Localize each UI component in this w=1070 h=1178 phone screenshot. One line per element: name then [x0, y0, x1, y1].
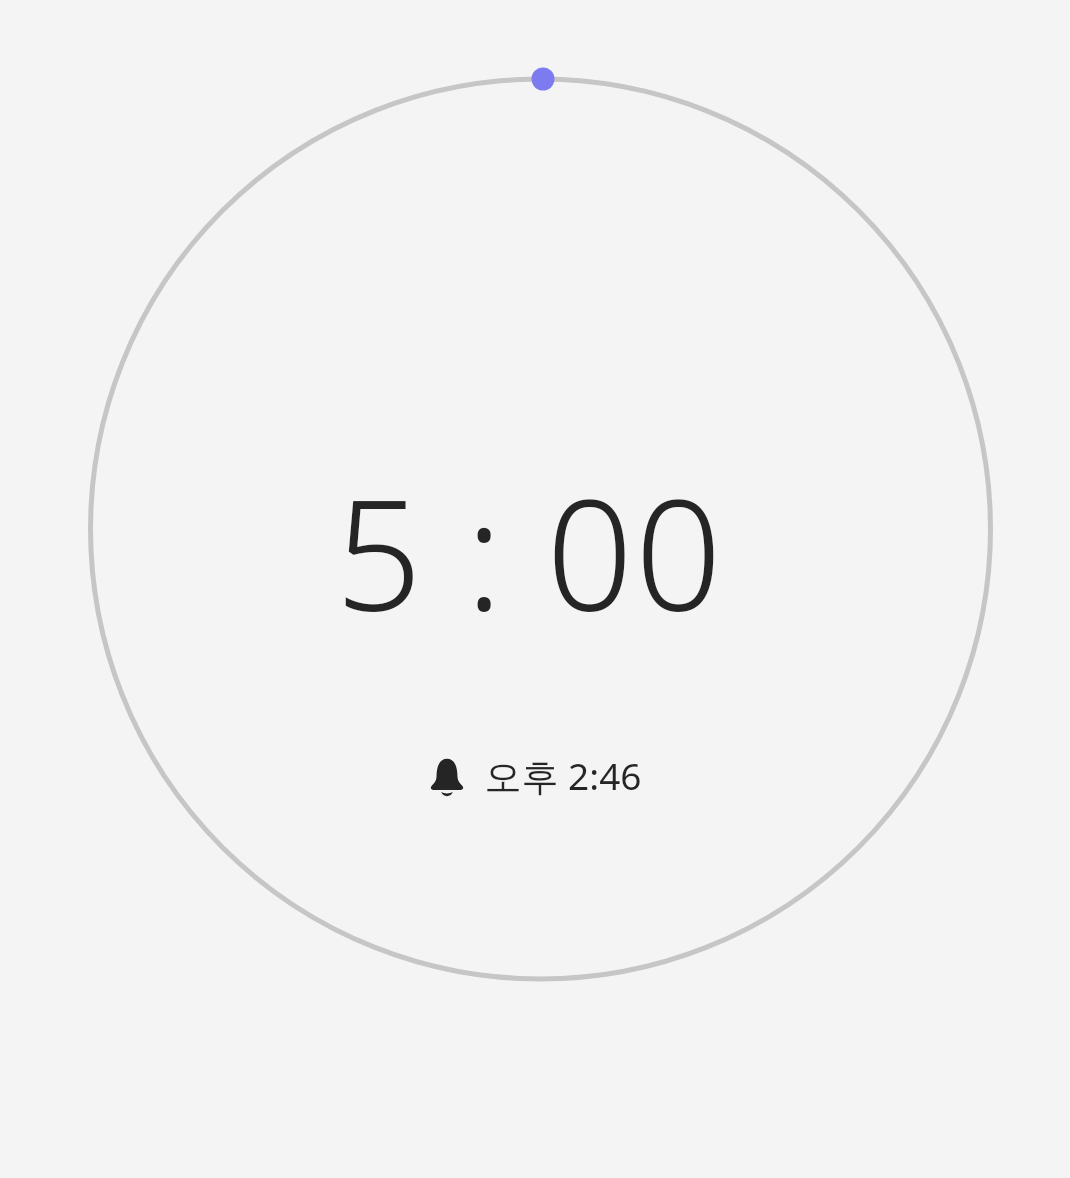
button[interactable]: 5 : 00: [0, 0, 1070, 1178]
other: Alarm: [429, 758, 465, 794]
staticText: 5 : 00: [335, 448, 724, 655]
button[interactable]: Alarm: [429, 750, 642, 801]
staticText: 오후 2:46: [484, 750, 642, 801]
